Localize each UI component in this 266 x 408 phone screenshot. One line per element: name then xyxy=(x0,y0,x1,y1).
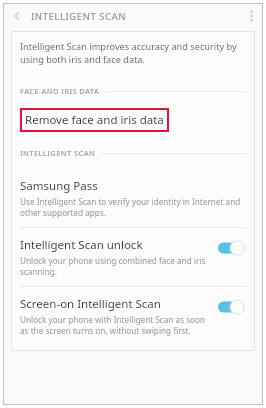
staticText: Screen-on Intelligent Scan xyxy=(20,296,161,312)
staticText: FACE AND IRIS DATA xyxy=(20,86,100,96)
button[interactable]: Toggle Intelligent Scan unlock xyxy=(218,241,244,255)
button[interactable]: Toggle Screen-on Intelligent Scan xyxy=(218,300,244,314)
staticText: Use Intelligent Scan to verify your iden… xyxy=(20,196,246,218)
button[interactable]: Back xyxy=(3,3,31,29)
staticText: Unlock your phone with Intelligent Scan … xyxy=(20,314,210,336)
staticText: INTELLIGENT SCAN xyxy=(31,10,127,23)
button[interactable]: More options xyxy=(239,3,263,29)
staticText: Samsung Pass xyxy=(20,178,98,194)
staticText: Remove face and iris data xyxy=(25,112,164,128)
staticText: INTELLIGENT SCAN xyxy=(20,148,96,158)
staticText: Intelligent Scan improves accuracy and s… xyxy=(20,40,246,66)
button[interactable]: Screen-on Intelligent Scan xyxy=(20,287,246,345)
button[interactable]: Intelligent Scan unlock xyxy=(20,228,246,286)
button[interactable]: Remove face and iris data xyxy=(20,108,169,132)
staticText: Intelligent Scan unlock xyxy=(20,237,143,253)
staticText: Unlock your phone using combined face an… xyxy=(20,255,210,277)
button[interactable]: Samsung Pass xyxy=(20,169,246,227)
